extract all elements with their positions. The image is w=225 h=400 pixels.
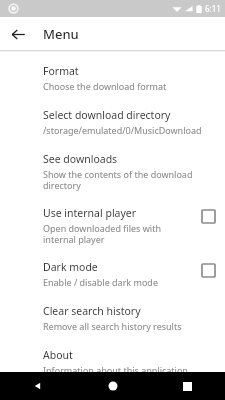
button[interactable]: Dark mode xyxy=(197,259,219,281)
button[interactable]: Format xyxy=(0,52,225,92)
staticText: Show the contents of the download direct… xyxy=(43,168,211,192)
staticText: Use internal player xyxy=(43,206,137,220)
button[interactable]: Use internal player xyxy=(0,206,225,246)
staticText: Choose the download format xyxy=(43,80,167,92)
staticText: About xyxy=(43,348,73,362)
button[interactable]: Clear search history xyxy=(0,304,225,332)
staticText: Dark mode xyxy=(43,260,98,274)
button[interactable]: Back xyxy=(0,372,75,400)
staticText: /storage/emulated/0/MusicDownload xyxy=(43,124,202,136)
staticText: Open downloaded files with internal play… xyxy=(43,222,193,246)
staticText: Menu xyxy=(43,25,79,43)
button[interactable]: Recent apps xyxy=(150,372,225,400)
button[interactable]: Select download directory xyxy=(0,108,225,136)
staticText: Select download directory xyxy=(43,108,171,122)
staticText: Remove all search history results xyxy=(43,320,182,332)
button[interactable]: About xyxy=(0,348,225,372)
button[interactable]: Home xyxy=(75,372,150,400)
staticText: Format xyxy=(43,64,79,78)
button[interactable]: Dark mode xyxy=(0,260,225,288)
button[interactable]: Use internal player xyxy=(197,205,219,227)
button[interactable]: See downloads xyxy=(0,152,225,192)
staticText: Enable / disable dark mode xyxy=(43,276,158,288)
staticText: Information about this application xyxy=(43,364,188,372)
staticText: 6:11 xyxy=(205,3,221,14)
button[interactable]: Back xyxy=(3,19,33,49)
staticText: See downloads xyxy=(43,152,118,166)
staticText: Clear search history xyxy=(43,304,141,318)
